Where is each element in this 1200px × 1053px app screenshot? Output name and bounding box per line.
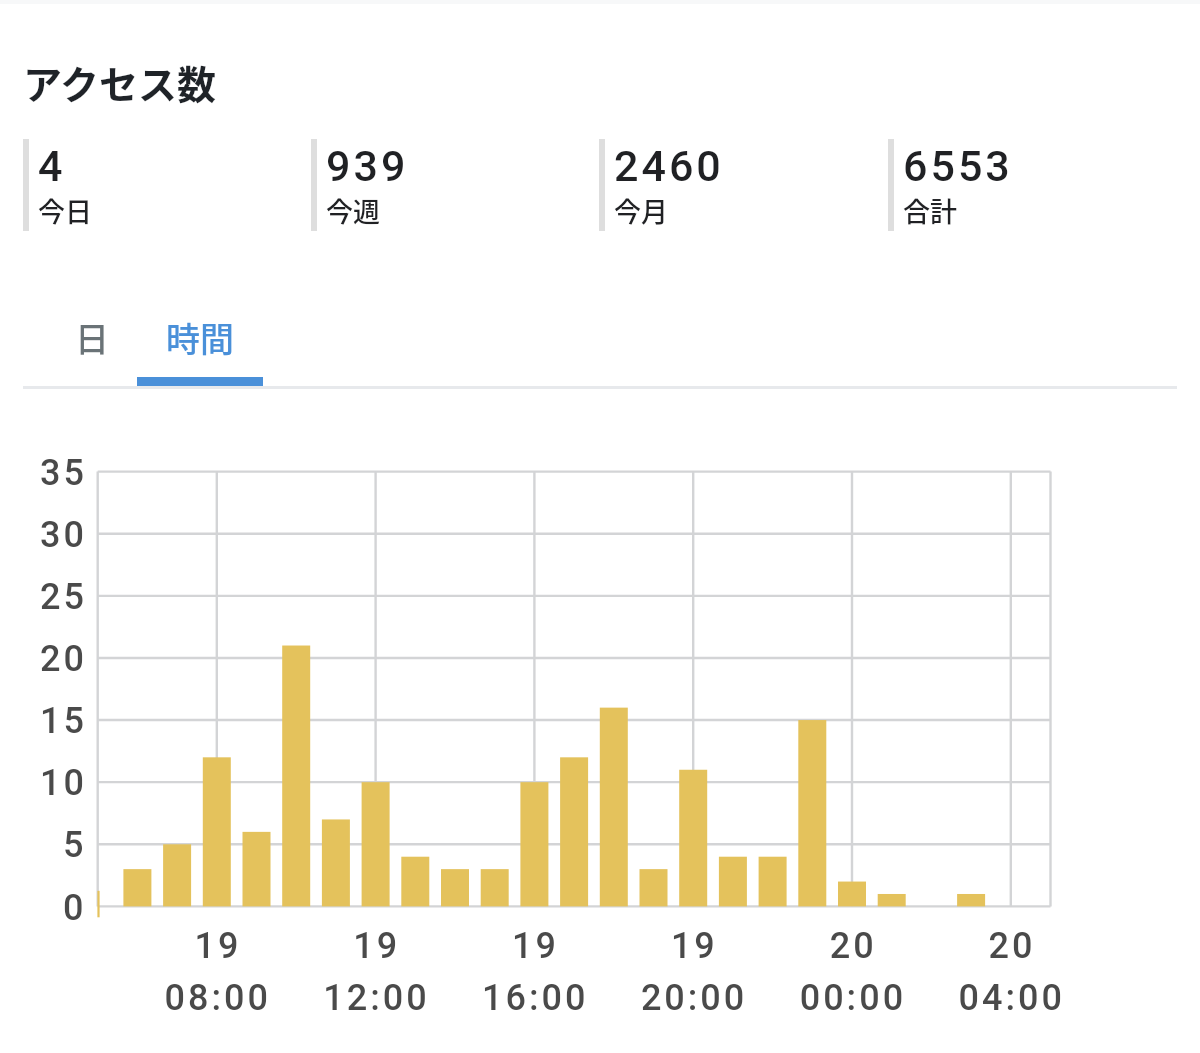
- button[interactable]: 6553: [888, 139, 1177, 231]
- other: Hourly access count chart: [26, 455, 1056, 1015]
- button[interactable]: 時間: [137, 306, 263, 387]
- button[interactable]: 日: [47, 306, 137, 387]
- staticText: 合計: [903, 191, 957, 230]
- staticText: 4: [38, 141, 66, 191]
- staticText: 今日: [38, 191, 92, 230]
- button[interactable]: 939: [311, 139, 599, 231]
- button[interactable]: 4: [23, 139, 311, 231]
- staticText: 今月: [614, 191, 668, 230]
- staticText: 6553: [903, 141, 1013, 191]
- staticText: 日: [75, 313, 109, 362]
- button[interactable]: 2460: [599, 139, 888, 231]
- staticText: アクセス数: [23, 54, 217, 110]
- staticText: 今週: [326, 191, 380, 230]
- staticText: 939: [326, 141, 409, 191]
- staticText: 時間: [166, 313, 234, 362]
- staticText: 2460: [614, 141, 724, 191]
